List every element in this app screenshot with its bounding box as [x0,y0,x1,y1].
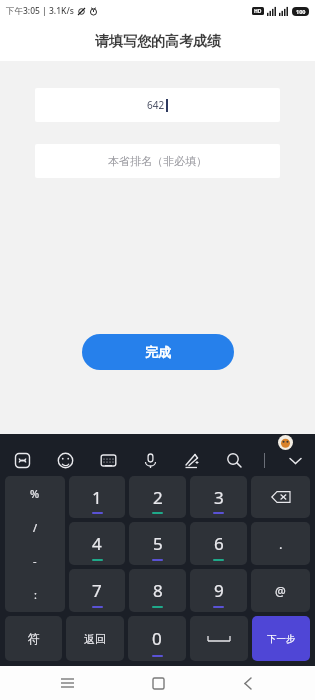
staticText: 0 [152,627,162,650]
button[interactable]: 8 [129,569,186,612]
staticText: 下午3:05 | 3.1K/s [6,5,74,17]
button[interactable]: 本省排名（非必填） [35,144,280,178]
button[interactable]: 642 [35,88,280,122]
button[interactable]: Handwriting [180,448,204,472]
button[interactable]: Search [222,448,246,472]
button[interactable]: Recent apps [52,668,82,698]
staticText: 1 [92,486,102,509]
button[interactable]: Backspace [251,476,310,518]
button[interactable]: 0 [128,616,186,661]
staticText: 符 [28,631,40,646]
staticText: @ [275,583,286,599]
button[interactable]: Sogou input [10,448,34,472]
staticText: 642 [147,98,165,112]
button[interactable]: Emoji [53,448,77,472]
button[interactable]: Back [233,668,263,698]
staticText: HD [254,8,262,15]
button[interactable]: Return [66,616,124,661]
button[interactable]: Voice input [138,448,162,472]
staticText: 100 [296,8,306,15]
button[interactable]: 9 [190,569,247,612]
button[interactable]: Period [251,522,310,565]
staticText: . [279,535,283,553]
button[interactable]: Home [143,668,173,698]
staticText: 5 [153,532,163,555]
button[interactable]: Keyboard layout [96,448,120,472]
staticText: 7 [92,579,102,602]
button[interactable]: 3 [190,476,247,518]
staticText: 本省排名（非必填） [108,154,207,168]
button[interactable]: Sticker [278,435,293,450]
staticText: 完成 [145,344,171,360]
staticText: 8 [153,579,163,602]
button[interactable]: Collapse keyboard [283,448,307,472]
button[interactable]: 下一步 [252,616,310,661]
button[interactable]: 5 [129,522,186,565]
button[interactable]: % [5,476,65,612]
staticText: 下一步 [267,633,296,645]
staticText: 6 [214,532,224,555]
button[interactable]: 完成 [82,334,234,370]
staticText: / [33,520,38,535]
button[interactable]: Symbols [5,616,62,661]
button[interactable]: 6 [190,522,247,565]
button[interactable]: 1 [69,476,125,518]
button[interactable]: At sign [251,569,310,612]
staticText: 4 [92,532,102,555]
button[interactable]: 7 [69,569,125,612]
staticText: - [33,553,37,568]
staticText: 3 [214,486,224,509]
staticText: 2 [153,486,163,509]
button[interactable]: Space [190,616,248,661]
button[interactable]: 2 [129,476,186,518]
button[interactable]: 4 [69,522,125,565]
staticText: 请填写您的高考成绩 [95,33,221,51]
staticText: 返回 [84,632,106,646]
staticText: % [30,486,40,501]
staticText: : [34,587,37,602]
staticText: 9 [214,579,224,602]
